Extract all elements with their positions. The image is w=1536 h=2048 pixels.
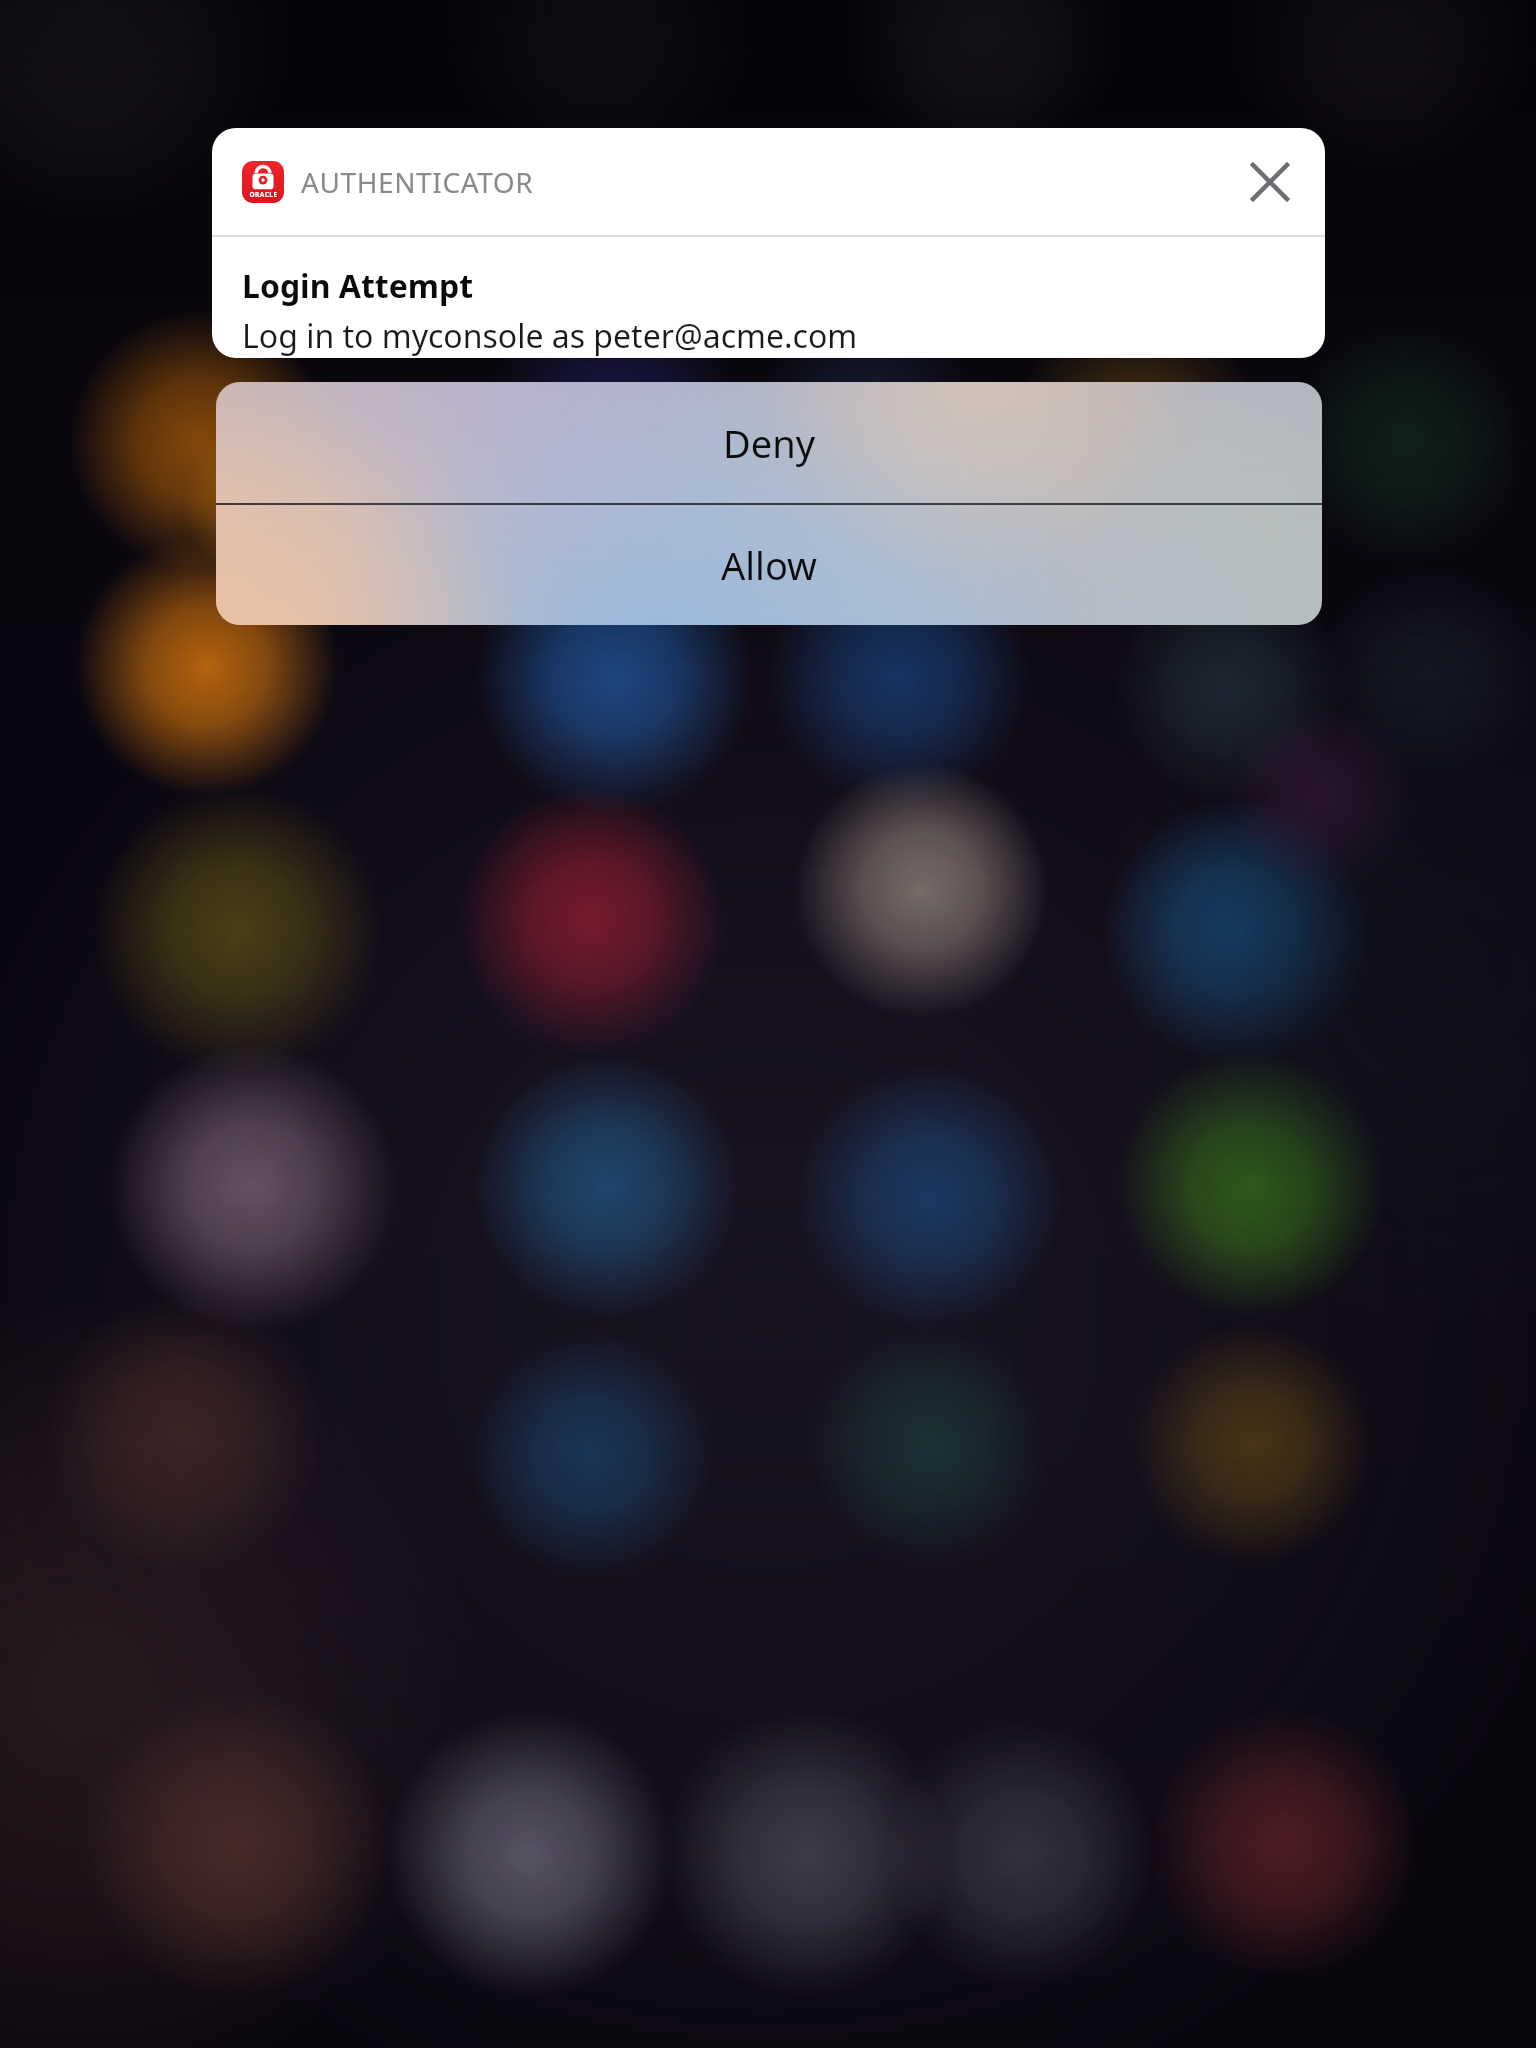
staticText: Deny: [723, 417, 816, 469]
staticText: Allow: [721, 539, 817, 591]
staticText: AUTHENTICATOR: [301, 163, 534, 201]
button[interactable]: Allow: [216, 505, 1322, 625]
button[interactable]: Close notification: [1233, 145, 1307, 219]
button[interactable]: ORACLE: [212, 128, 1325, 358]
staticText: ORACLE: [249, 190, 278, 199]
staticText: Log in to myconsole as peter@acme.com: [242, 314, 858, 358]
staticText: Login Attempt: [242, 264, 474, 308]
button[interactable]: Deny: [216, 382, 1322, 503]
